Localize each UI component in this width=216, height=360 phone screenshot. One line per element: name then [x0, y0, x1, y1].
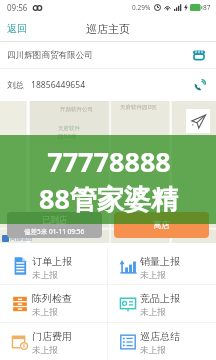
button[interactable]: 已到店: [7, 212, 102, 238]
staticText: 0.29%: [132, 3, 151, 12]
button[interactable]: 竞品上报: [108, 285, 216, 322]
staticText: 巡店主页: [86, 22, 130, 36]
button[interactable]: 离店: [114, 212, 209, 238]
staticText: 高德地图: [10, 235, 32, 242]
button[interactable]: 陈列检查: [0, 285, 107, 322]
button[interactable]: 返回: [0, 15, 37, 42]
button[interactable]: 门店费用: [0, 323, 107, 360]
staticText: 竞品上报: [140, 292, 180, 305]
staticText: 88管家婆精: [39, 180, 178, 217]
staticText: 未上报: [140, 345, 166, 356]
button[interactable]: 订单上报: [0, 248, 107, 284]
staticText: 返回: [7, 22, 27, 35]
staticText: 未上报: [32, 270, 58, 281]
button[interactable]: 门店信息: [188, 44, 210, 66]
staticText: 门店费用: [32, 330, 72, 343]
button[interactable]: 巡店总结: [108, 323, 216, 360]
button[interactable]: 销量上报: [108, 248, 216, 284]
staticText: 离店: [153, 220, 170, 231]
staticText: 77778888: [47, 143, 171, 180]
staticText: 未上报: [140, 270, 166, 281]
staticText: 未上报: [32, 345, 58, 356]
staticText: 巡店总结: [140, 330, 180, 343]
staticText: 订单上报: [32, 255, 72, 268]
staticText: 未上报: [140, 307, 166, 318]
staticText: 陈列检查: [32, 292, 72, 305]
staticText: 销量上报: [140, 255, 180, 268]
staticText: 偏差5米 01-11 09:56: [24, 227, 85, 236]
staticText: 天府软件园D区: [120, 103, 158, 111]
staticText: 未上报: [32, 307, 58, 318]
staticText: 四川辉图商贸有限公司: [7, 50, 188, 61]
button[interactable]: 拨打电话: [188, 74, 210, 96]
button[interactable]: 导航: [186, 109, 210, 133]
staticText: 天府软件 园D2座: [58, 125, 80, 140]
staticText: 87: [203, 3, 211, 12]
staticText: 已到店: [42, 215, 68, 226]
staticText: 刘总: [7, 80, 25, 91]
staticText: 09:56: [7, 2, 28, 13]
staticText: 18856449654: [31, 79, 188, 91]
staticText: 开励软件公司: [60, 106, 93, 113]
